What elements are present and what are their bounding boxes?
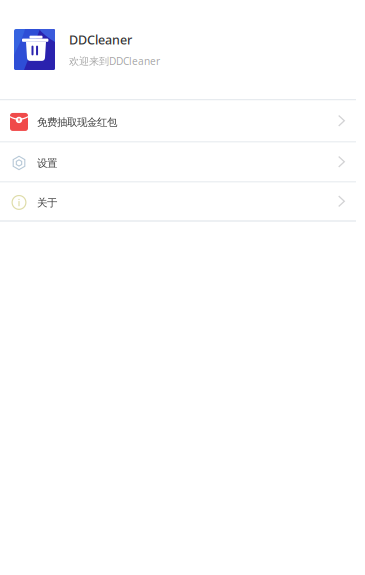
staticText: 设置 [37,157,57,170]
staticText: 免费抽取现金红包 [37,116,117,129]
staticText: 关于 [37,196,57,209]
button[interactable]: 设置 [0,142,365,182]
staticText: 欢迎来到DDCleaner [69,54,160,68]
staticText: DDCleaner [69,31,132,48]
button[interactable]: 关于 [0,182,365,221]
button[interactable]: 免费抽取现金红包 [0,100,365,142]
